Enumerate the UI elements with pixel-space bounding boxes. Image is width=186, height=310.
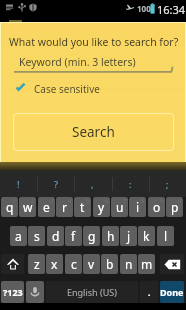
button[interactable]: c	[65, 254, 82, 274]
button[interactable]: x	[46, 254, 63, 274]
staticText: Search	[72, 123, 115, 141]
button[interactable]: g	[83, 226, 100, 246]
staticText: Done	[160, 286, 184, 298]
button[interactable]: q	[1, 197, 18, 217]
staticText: 4	[68, 197, 72, 204]
staticText: 7	[123, 197, 127, 204]
button[interactable]: s	[28, 226, 45, 246]
button[interactable]: Shift	[1, 254, 24, 274]
button[interactable]: e	[38, 197, 55, 217]
button[interactable]: Case sensitive	[14, 81, 106, 97]
staticText: 5	[86, 197, 90, 204]
staticText: w	[23, 199, 33, 215]
staticText: v	[88, 256, 95, 272]
button[interactable]: i	[129, 197, 146, 217]
button[interactable]: m	[138, 254, 155, 274]
staticText: x	[51, 256, 58, 272]
staticText: c	[71, 256, 77, 272]
staticText: English (US)	[67, 286, 117, 298]
staticText: 100	[137, 3, 151, 14]
button[interactable]: n	[120, 254, 137, 274]
staticText: u	[116, 199, 124, 215]
staticText: ,	[91, 178, 94, 190]
staticText: 0	[178, 197, 182, 204]
button[interactable]: f	[65, 226, 82, 246]
staticText: o	[153, 199, 161, 215]
staticText: j	[127, 228, 131, 244]
staticText: .	[148, 286, 151, 298]
button[interactable]: ?	[37, 171, 74, 197]
button[interactable]: z	[28, 254, 45, 274]
staticText: 1	[13, 197, 17, 204]
staticText: r	[62, 199, 67, 215]
button[interactable]: t	[74, 197, 91, 217]
button[interactable]: d	[47, 226, 64, 246]
staticText: h	[107, 228, 115, 244]
button[interactable]: English (US)	[46, 281, 138, 303]
staticText: Keyword (min. 3 letters)	[19, 55, 136, 69]
staticText: f	[71, 228, 76, 244]
staticText: g	[88, 228, 96, 244]
staticText: Case sensitive	[34, 82, 100, 96]
staticText: y	[98, 199, 105, 215]
staticText: What would you like to search for?	[9, 35, 179, 49]
button[interactable]: Keyword (min. 3 letters)	[14, 54, 172, 75]
button[interactable]: Search	[13, 113, 174, 151]
button[interactable]: p	[166, 197, 183, 217]
button[interactable]: .	[140, 281, 158, 303]
button[interactable]: ?123	[1, 281, 24, 303]
button[interactable]: w	[19, 197, 36, 217]
button[interactable]: a	[10, 226, 27, 246]
button[interactable]: ,	[74, 171, 111, 197]
staticText: l	[164, 228, 168, 244]
staticText: m	[141, 256, 153, 272]
button[interactable]: ;	[149, 171, 186, 197]
staticText: ?	[54, 178, 58, 190]
staticText: e	[43, 199, 50, 215]
button[interactable]: j	[120, 226, 137, 246]
button[interactable]: h	[102, 226, 119, 246]
staticText: 2	[31, 197, 35, 204]
staticText: 16:34	[157, 2, 186, 17]
staticText: ;	[166, 178, 169, 190]
staticText: k	[143, 228, 150, 244]
staticText: ?123	[3, 286, 23, 298]
staticText: p	[171, 199, 179, 215]
staticText: b	[106, 256, 114, 272]
staticText: s	[34, 228, 40, 244]
button[interactable]: l	[157, 226, 174, 246]
button[interactable]: v	[83, 254, 100, 274]
staticText: 6	[105, 197, 109, 204]
staticText: i	[136, 199, 140, 215]
staticText: 9	[160, 197, 164, 204]
staticText: d	[52, 228, 60, 244]
button[interactable]: :	[112, 171, 149, 197]
button[interactable]: r	[56, 197, 73, 217]
staticText: !	[17, 178, 20, 190]
button[interactable]: !	[0, 171, 37, 197]
staticText: :	[129, 178, 132, 190]
button[interactable]: Done	[160, 281, 184, 303]
button[interactable]: b	[101, 254, 118, 274]
staticText: z	[34, 256, 40, 272]
staticText: 3	[50, 197, 54, 204]
staticText: 8	[141, 197, 145, 204]
staticText: q	[6, 199, 14, 215]
staticText: a	[15, 228, 22, 244]
staticText: n	[125, 256, 133, 272]
button[interactable]: u	[111, 197, 128, 217]
button[interactable]: o	[148, 197, 165, 217]
button[interactable]: Voice input	[26, 281, 44, 303]
button[interactable]: y	[93, 197, 110, 217]
staticText: t	[80, 199, 85, 215]
button[interactable]: k	[138, 226, 155, 246]
button[interactable]: Delete	[160, 254, 184, 274]
